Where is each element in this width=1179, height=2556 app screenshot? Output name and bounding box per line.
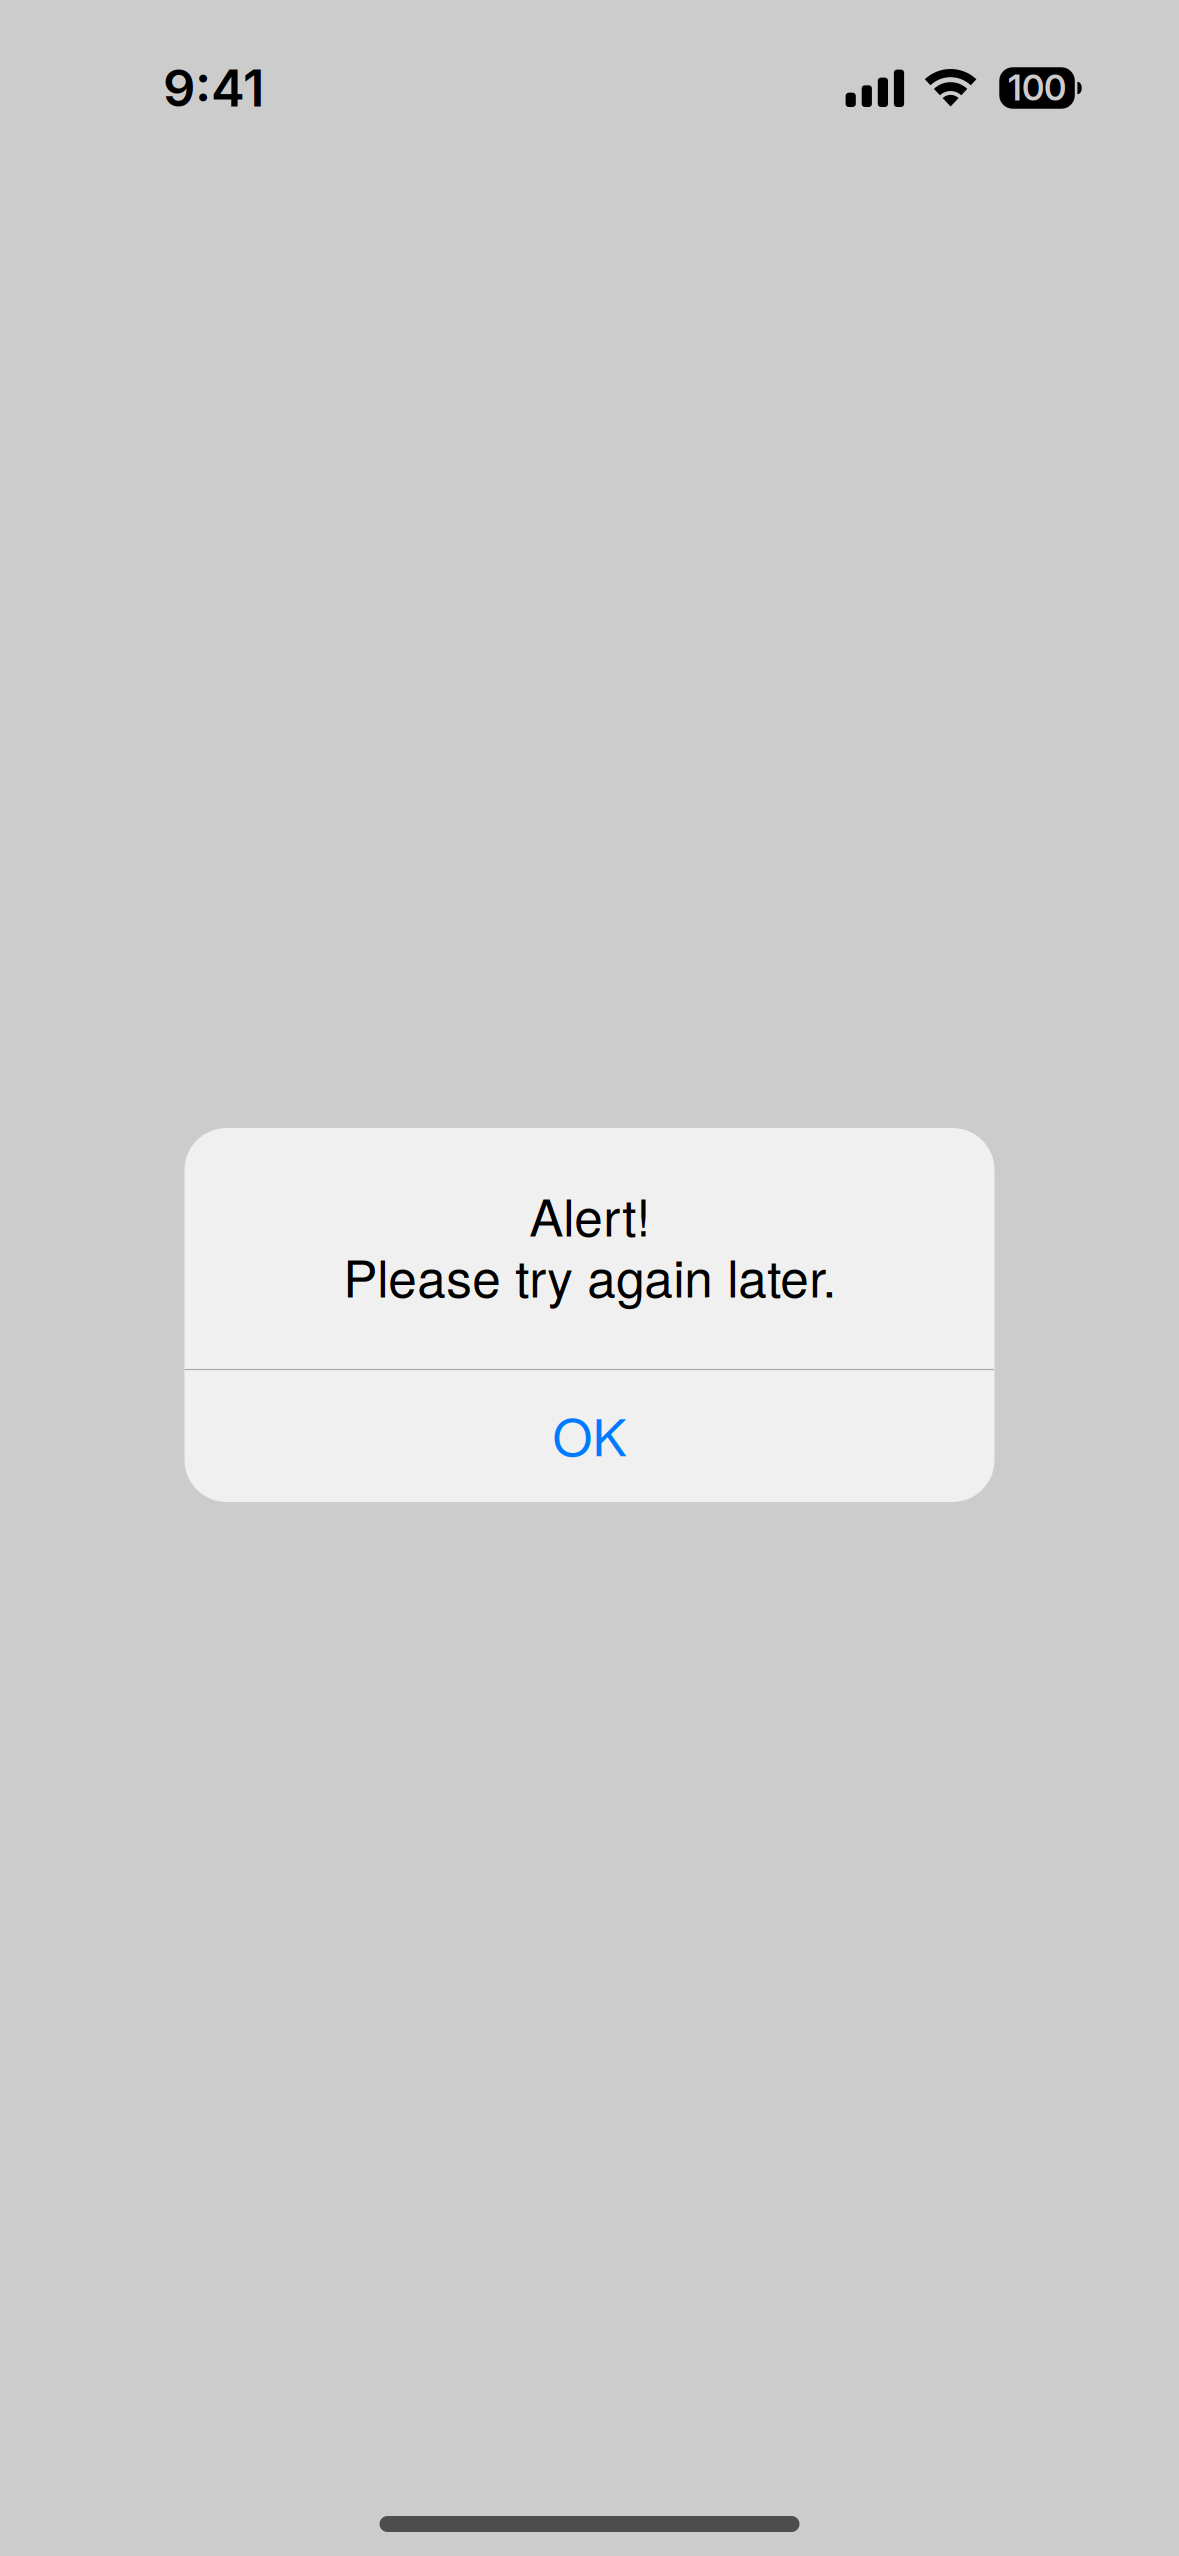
staticText: 9:41: [163, 57, 264, 119]
staticText: Alert! Please try again later.: [343, 1178, 836, 1312]
button[interactable]: OK: [184, 1370, 994, 1502]
staticText: OK: [552, 1397, 626, 1471]
staticText: 100: [1008, 67, 1066, 109]
